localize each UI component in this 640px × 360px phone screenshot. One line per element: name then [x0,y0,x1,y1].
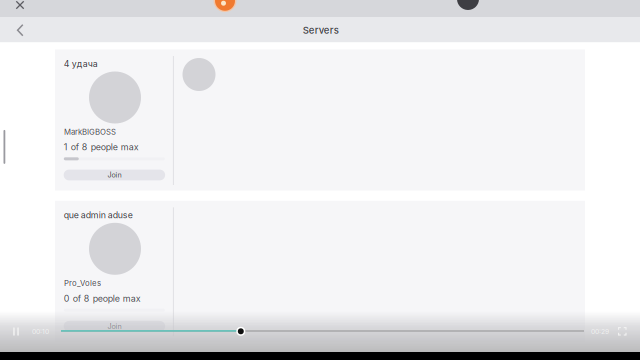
staticText: 00:29 [591,327,609,336]
button[interactable]: Join [64,321,165,332]
button[interactable]: Full screen [615,324,629,338]
staticText: Pro_Voles [64,278,101,288]
staticText: 1 of 8 people max [64,142,139,152]
staticText: Join [107,322,121,331]
staticText: Servers [303,24,339,36]
staticText: que admin aduse [64,210,133,220]
staticText: 00:10 [32,327,49,336]
staticText: Join [107,171,121,179]
button[interactable]: Back [7,18,33,42]
staticText: 4 удача [64,58,98,69]
staticText: MarkBIGBOSS [64,127,116,137]
staticText: 0 of 8 people max [64,293,141,304]
button[interactable]: Close [11,0,29,13]
button[interactable]: Pause [9,324,23,338]
button[interactable]: Join [64,170,165,180]
